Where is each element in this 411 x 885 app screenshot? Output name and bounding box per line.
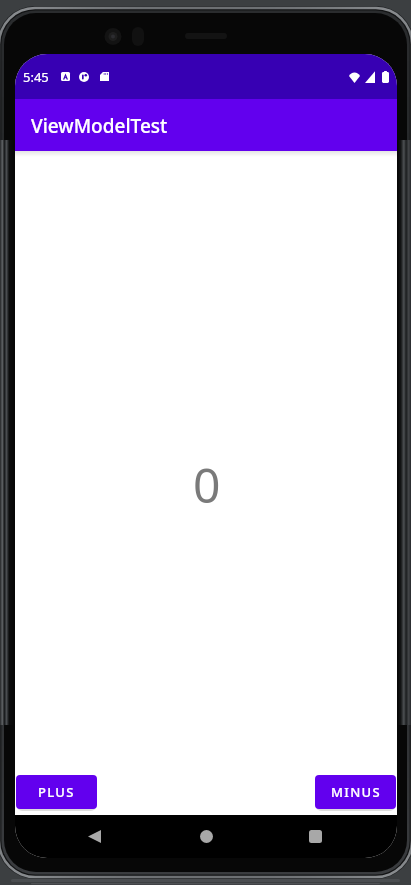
- button[interactable]: Recent apps: [291, 815, 339, 858]
- button[interactable]: Back: [70, 815, 118, 858]
- staticText: 5:45: [23, 68, 49, 86]
- staticText: MINUS: [331, 783, 381, 801]
- staticText: 0: [193, 452, 221, 517]
- button[interactable]: PLUS: [16, 775, 97, 809]
- button[interactable]: Home: [182, 815, 230, 858]
- staticText: ViewModelTest: [31, 113, 168, 139]
- button[interactable]: MINUS: [315, 775, 396, 809]
- staticText: PLUS: [38, 783, 75, 801]
